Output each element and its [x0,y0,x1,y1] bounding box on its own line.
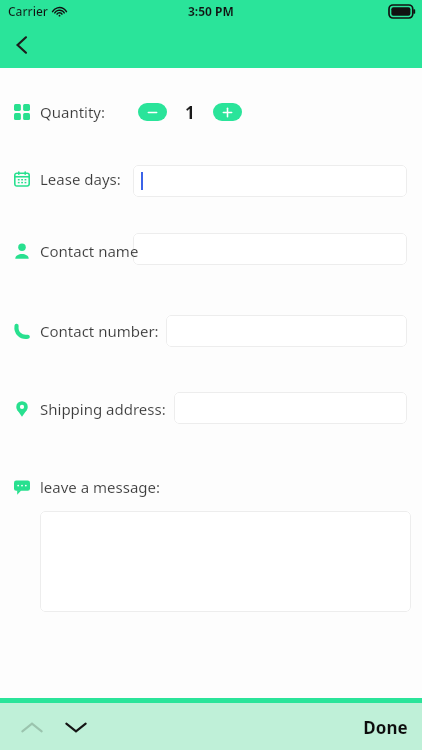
staticText: Done [363,716,408,739]
staticText: Contact name [40,241,139,261]
staticText: Quantity: [40,102,106,122]
button[interactable]: Previous field [10,705,54,749]
button[interactable] [166,315,407,347]
button[interactable]: Done [349,704,422,750]
staticText: 1 [185,101,195,124]
button[interactable]: Increase quantity [213,103,242,121]
staticText: leave a message: [40,477,161,497]
button[interactable]: Decrease quantity [138,103,167,121]
staticText: Carrier [8,3,48,19]
button[interactable] [133,165,407,197]
staticText: Contact number: [40,321,159,341]
staticText: 3:50 PM [188,3,234,19]
staticText: Lease days: [40,169,121,189]
button[interactable]: Next field [54,705,98,749]
button[interactable] [133,233,407,265]
button[interactable] [174,392,407,424]
staticText: Shipping address: [40,399,166,419]
button[interactable]: Back [0,23,44,67]
